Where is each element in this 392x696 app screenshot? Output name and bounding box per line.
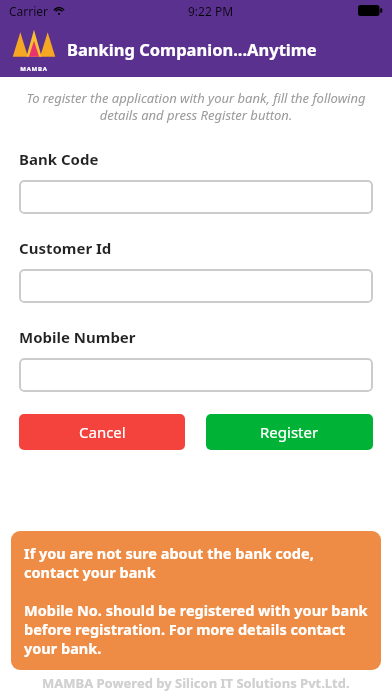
staticText: Carrier <box>9 3 49 19</box>
staticText: Cancel <box>79 422 126 442</box>
button[interactable]: Register <box>206 414 373 450</box>
staticText: 9:22 PM <box>188 3 234 19</box>
staticText: Mobile Number <box>19 327 136 347</box>
button[interactable]: If you are not sure about the bank code,… <box>11 531 381 670</box>
button[interactable]: Cancel <box>19 414 185 450</box>
staticText: Customer Id <box>19 238 112 258</box>
staticText: MAMBA <box>20 65 48 73</box>
button[interactable]: Mobile Number <box>19 358 373 392</box>
staticText: Banking Companion...Anytime Anywhere... <box>67 38 392 60</box>
staticText: To register the application with your ba… <box>19 89 373 124</box>
staticText: MAMBA Powered by Silicon IT Solutions Pv… <box>42 674 350 692</box>
button[interactable]: Bank Code <box>19 180 373 214</box>
staticText: If you are not sure about the bank code,… <box>24 543 368 582</box>
staticText: Mobile No. should be registered with you… <box>24 600 368 658</box>
staticText: Register <box>260 422 319 442</box>
button[interactable]: Customer Id <box>19 269 373 303</box>
other: MAMBA logo <box>10 25 58 73</box>
staticText: Bank Code <box>19 149 99 169</box>
